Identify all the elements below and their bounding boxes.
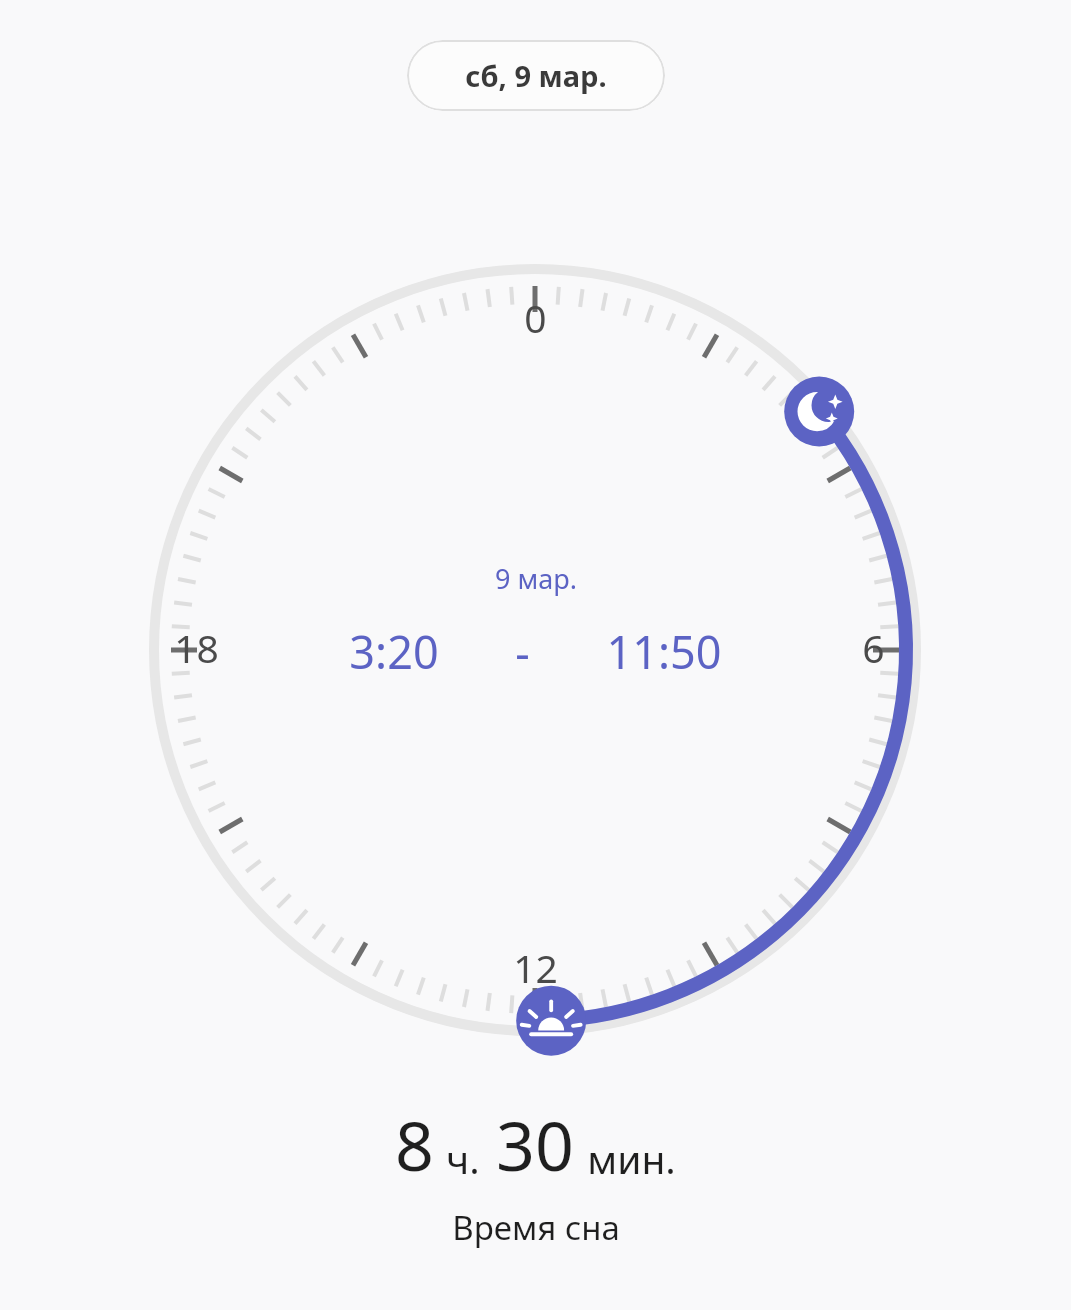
staticText: мин.: [587, 1132, 676, 1185]
staticText: 3:20: [349, 621, 439, 682]
staticText: ч.: [446, 1132, 480, 1185]
button[interactable]: 3:20: [343, 617, 445, 686]
staticText: сб, 9 мар.: [465, 56, 607, 95]
staticText: 9 мар.: [495, 560, 577, 597]
staticText: 12: [513, 941, 558, 994]
staticText: Время сна: [452, 1205, 620, 1250]
button[interactable]: 11:50: [600, 617, 728, 686]
staticText: 8: [395, 1098, 434, 1191]
staticText: 0: [524, 291, 547, 344]
button[interactable]: Время отхода ко сну: [785, 360, 861, 436]
staticText: 30: [496, 1098, 574, 1191]
staticText: 18: [174, 621, 219, 674]
button[interactable]: сб, 9 мар.: [407, 40, 665, 111]
staticText: 6: [862, 621, 885, 674]
button[interactable]: Время пробуждения: [509, 983, 585, 1059]
staticText: -: [515, 621, 530, 682]
staticText: 11:50: [606, 621, 722, 682]
